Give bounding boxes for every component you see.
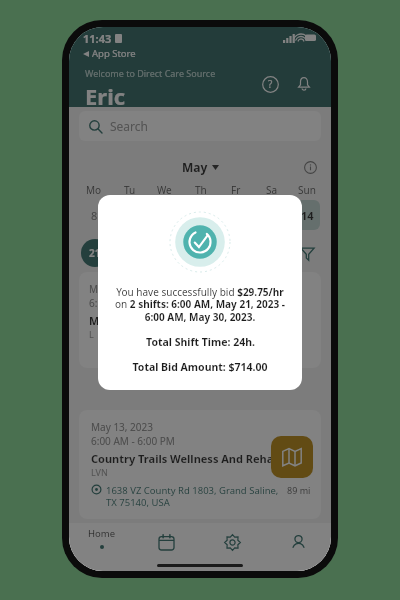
button[interactable]: We <box>148 183 181 230</box>
staticText: Welcome to Direct Care Source <box>85 67 216 79</box>
button[interactable]: Filter <box>295 241 319 265</box>
staticText: ? <box>268 77 273 91</box>
staticText: We <box>157 183 172 197</box>
staticText: 1638 VZ County Rd 1803, Grand Saline, TX… <box>106 484 279 509</box>
staticText: LVN <box>91 466 108 478</box>
staticText: 21 <box>89 246 101 260</box>
staticText: Eric <box>85 81 126 107</box>
button[interactable]: Search <box>79 111 321 141</box>
staticText: Home <box>88 527 116 540</box>
button[interactable]: Mo <box>77 183 110 230</box>
staticText: Sun <box>298 183 316 197</box>
button[interactable]: Notifications <box>291 71 317 97</box>
button[interactable]: Settings <box>199 527 265 557</box>
staticText: L <box>89 328 94 340</box>
staticText: May <box>182 159 208 175</box>
button[interactable]: Info <box>301 158 319 176</box>
staticText: May 13, 2023 <box>91 420 153 434</box>
staticText: 6:00 AM - 6:00 PM <box>89 296 173 310</box>
staticText: 89 mi <box>287 484 311 496</box>
button[interactable]: Profile <box>265 527 331 557</box>
staticText: Tu <box>124 183 136 197</box>
button[interactable]: Tu <box>113 183 146 230</box>
staticText: You have successfully bid $29.75/hr on 2… <box>110 285 290 324</box>
button[interactable]: May 13, 2023 <box>79 410 321 519</box>
button[interactable]: Map <box>271 436 313 478</box>
staticText: Total Bid Amount: $714.00 <box>132 360 268 374</box>
staticText: Sa <box>266 183 278 197</box>
button[interactable]: 21 <box>81 239 109 267</box>
staticText: Mo <box>86 183 102 197</box>
button[interactable]: Sun <box>290 183 323 230</box>
staticText: 11:43 <box>83 31 112 46</box>
staticText: Th <box>195 183 207 197</box>
staticText: Fr <box>231 183 241 197</box>
button[interactable]: Fr <box>219 183 252 230</box>
button[interactable]: Calendar <box>134 527 199 557</box>
staticText: Search <box>110 118 148 134</box>
button[interactable]: Home <box>69 527 134 549</box>
staticText: M <box>89 313 100 328</box>
staticText: Total Shift Time: 24h. <box>146 335 255 349</box>
staticText: App Store <box>92 47 136 60</box>
staticText: 8 <box>91 208 98 223</box>
button[interactable]: May <box>182 159 219 175</box>
staticText: May 13, 2023 <box>89 282 151 296</box>
staticText: 11 <box>195 208 208 223</box>
staticText: Country Trails Wellness And Rehab <box>91 451 281 466</box>
staticText: 14 <box>301 208 314 223</box>
button[interactable]: May 13, 2023 <box>79 272 321 368</box>
staticText: 6:00 AM - 6:00 PM <box>91 434 175 448</box>
button[interactable]: Help <box>257 71 283 97</box>
button[interactable]: Sa <box>255 183 288 230</box>
button[interactable]: Th <box>184 183 217 230</box>
